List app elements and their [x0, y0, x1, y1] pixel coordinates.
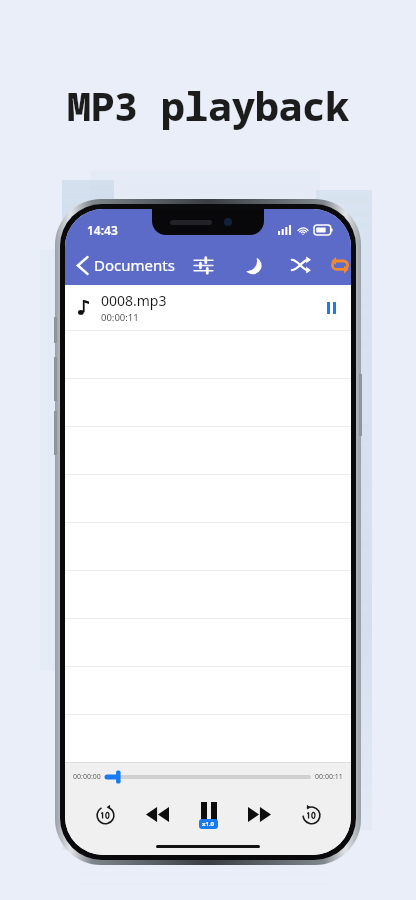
button[interactable]: Forward 10 seconds [290, 793, 332, 835]
staticText: 14:43 [87, 222, 118, 238]
staticText: x1.0 [202, 820, 215, 828]
button[interactable]: Repeat [328, 245, 351, 285]
staticText: Documents [94, 255, 175, 275]
staticText: MP3 playback [67, 78, 349, 132]
button[interactable]: Night mode [232, 245, 272, 285]
staticText: 00:00:11 [101, 311, 139, 324]
button[interactable]: Seek [107, 770, 309, 784]
button[interactable]: Next [238, 793, 280, 835]
button[interactable]: 0008.mp3 [65, 285, 351, 330]
staticText: 0008.mp3 [101, 291, 167, 310]
button[interactable]: Previous [136, 793, 178, 835]
staticText: 00:00:00 [73, 772, 101, 782]
button[interactable]: Pause [187, 793, 229, 835]
button[interactable]: Replay 10 seconds [84, 793, 126, 835]
button[interactable]: Pause [311, 285, 351, 330]
button[interactable]: Equalizer [183, 245, 223, 285]
button[interactable]: Documents [65, 245, 183, 285]
button[interactable]: Shuffle [281, 245, 321, 285]
staticText: 00:00:11 [315, 772, 343, 782]
